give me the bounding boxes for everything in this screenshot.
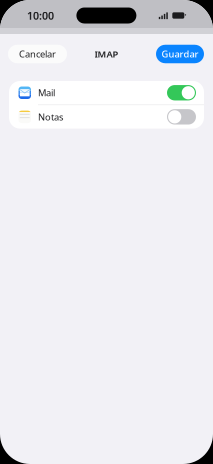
button[interactable]: On bbox=[167, 85, 196, 100]
button[interactable]: Off bbox=[167, 109, 196, 124]
staticText: Notas bbox=[38, 111, 63, 123]
staticText: 10:00 bbox=[27, 8, 54, 23]
staticText: Cancelar bbox=[19, 48, 56, 60]
staticText: Mail bbox=[38, 87, 55, 99]
button[interactable]: Guardar bbox=[156, 45, 204, 63]
staticText: IMAP bbox=[94, 48, 118, 60]
button[interactable]: Cancelar bbox=[8, 45, 67, 63]
staticText: Guardar bbox=[161, 48, 198, 60]
